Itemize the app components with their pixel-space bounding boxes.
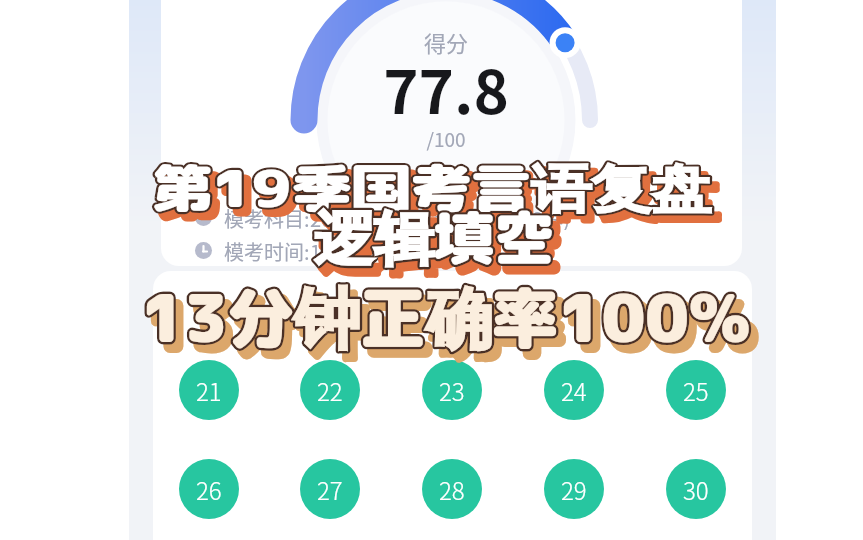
staticText: /100 <box>246 125 646 153</box>
staticText: 第19季国考言语复盘 <box>152 151 712 223</box>
staticText: 第19季国考言语复盘 <box>152 151 712 223</box>
staticText: 28 <box>439 472 465 507</box>
staticText: 13分钟正确率100% <box>148 279 758 371</box>
staticText: 逻辑填空 <box>314 197 554 278</box>
staticText: 第19季国考言语复盘 <box>159 158 719 230</box>
button[interactable]: 29 <box>544 459 604 519</box>
staticText: 29 <box>561 472 587 507</box>
button[interactable]: 26 <box>179 459 239 519</box>
staticText: 13分钟正确率100% <box>141 271 751 363</box>
staticText: 12月2日 09:00 -11:00 <box>310 237 500 263</box>
button[interactable]: 21 <box>179 360 239 420</box>
staticText: 模考时间: <box>224 237 310 263</box>
button[interactable]: 23 <box>422 360 482 420</box>
button[interactable]: 28 <box>422 459 482 519</box>
staticText: 13分钟正确率100% <box>148 279 758 371</box>
staticText: 模考科目: <box>224 204 310 230</box>
button[interactable]: 27 <box>300 459 360 519</box>
staticText: 21 <box>196 373 222 408</box>
button[interactable]: 22 <box>300 360 360 420</box>
staticText: 26 <box>196 472 222 507</box>
staticText: 30 <box>683 472 709 507</box>
staticText: 24 <box>561 373 587 408</box>
staticText: 77.8 <box>246 44 646 131</box>
staticText: 第19季国考言语复盘 <box>159 158 719 230</box>
button[interactable]: 24 <box>544 360 604 420</box>
staticText: 27 <box>317 472 343 507</box>
button[interactable]: 30 <box>666 459 726 519</box>
button[interactable]: 25 <box>666 360 726 420</box>
staticText: 得分 <box>246 26 646 58</box>
staticText: 逻辑填空 <box>321 205 561 285</box>
staticText: 23 <box>439 373 465 408</box>
staticText: 逻辑填空 <box>321 205 561 285</box>
staticText: 13分钟正确率100% <box>141 271 751 363</box>
staticText: 22 <box>317 373 343 408</box>
staticText: 逻辑填空 <box>314 197 554 278</box>
staticText: 25 <box>683 373 709 408</box>
staticText: 2023年国考言语专项(第19季) <box>310 204 571 230</box>
